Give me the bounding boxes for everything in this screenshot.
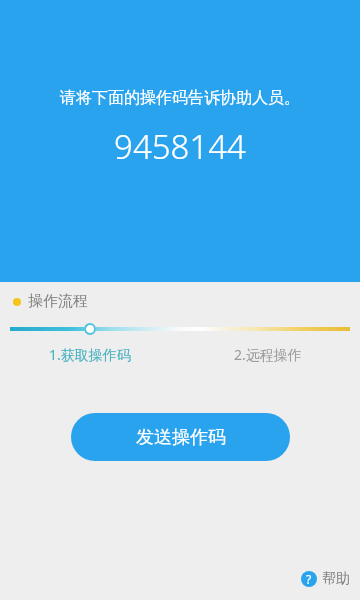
staticText: 帮助	[322, 570, 350, 588]
button[interactable]: 发送操作码	[71, 413, 290, 461]
staticText: ?	[306, 571, 312, 587]
other: Help	[301, 571, 317, 587]
staticText: 2.远程操作	[234, 345, 302, 364]
button[interactable]: Help	[293, 564, 360, 595]
button[interactable]: 9458144	[0, 124, 360, 169]
staticText: 1.获取操作码	[49, 345, 131, 364]
staticText: 操作流程	[28, 292, 88, 311]
staticText: 请将下面的操作码告诉协助人员。	[0, 88, 360, 108]
staticText: 发送操作码	[136, 426, 226, 449]
